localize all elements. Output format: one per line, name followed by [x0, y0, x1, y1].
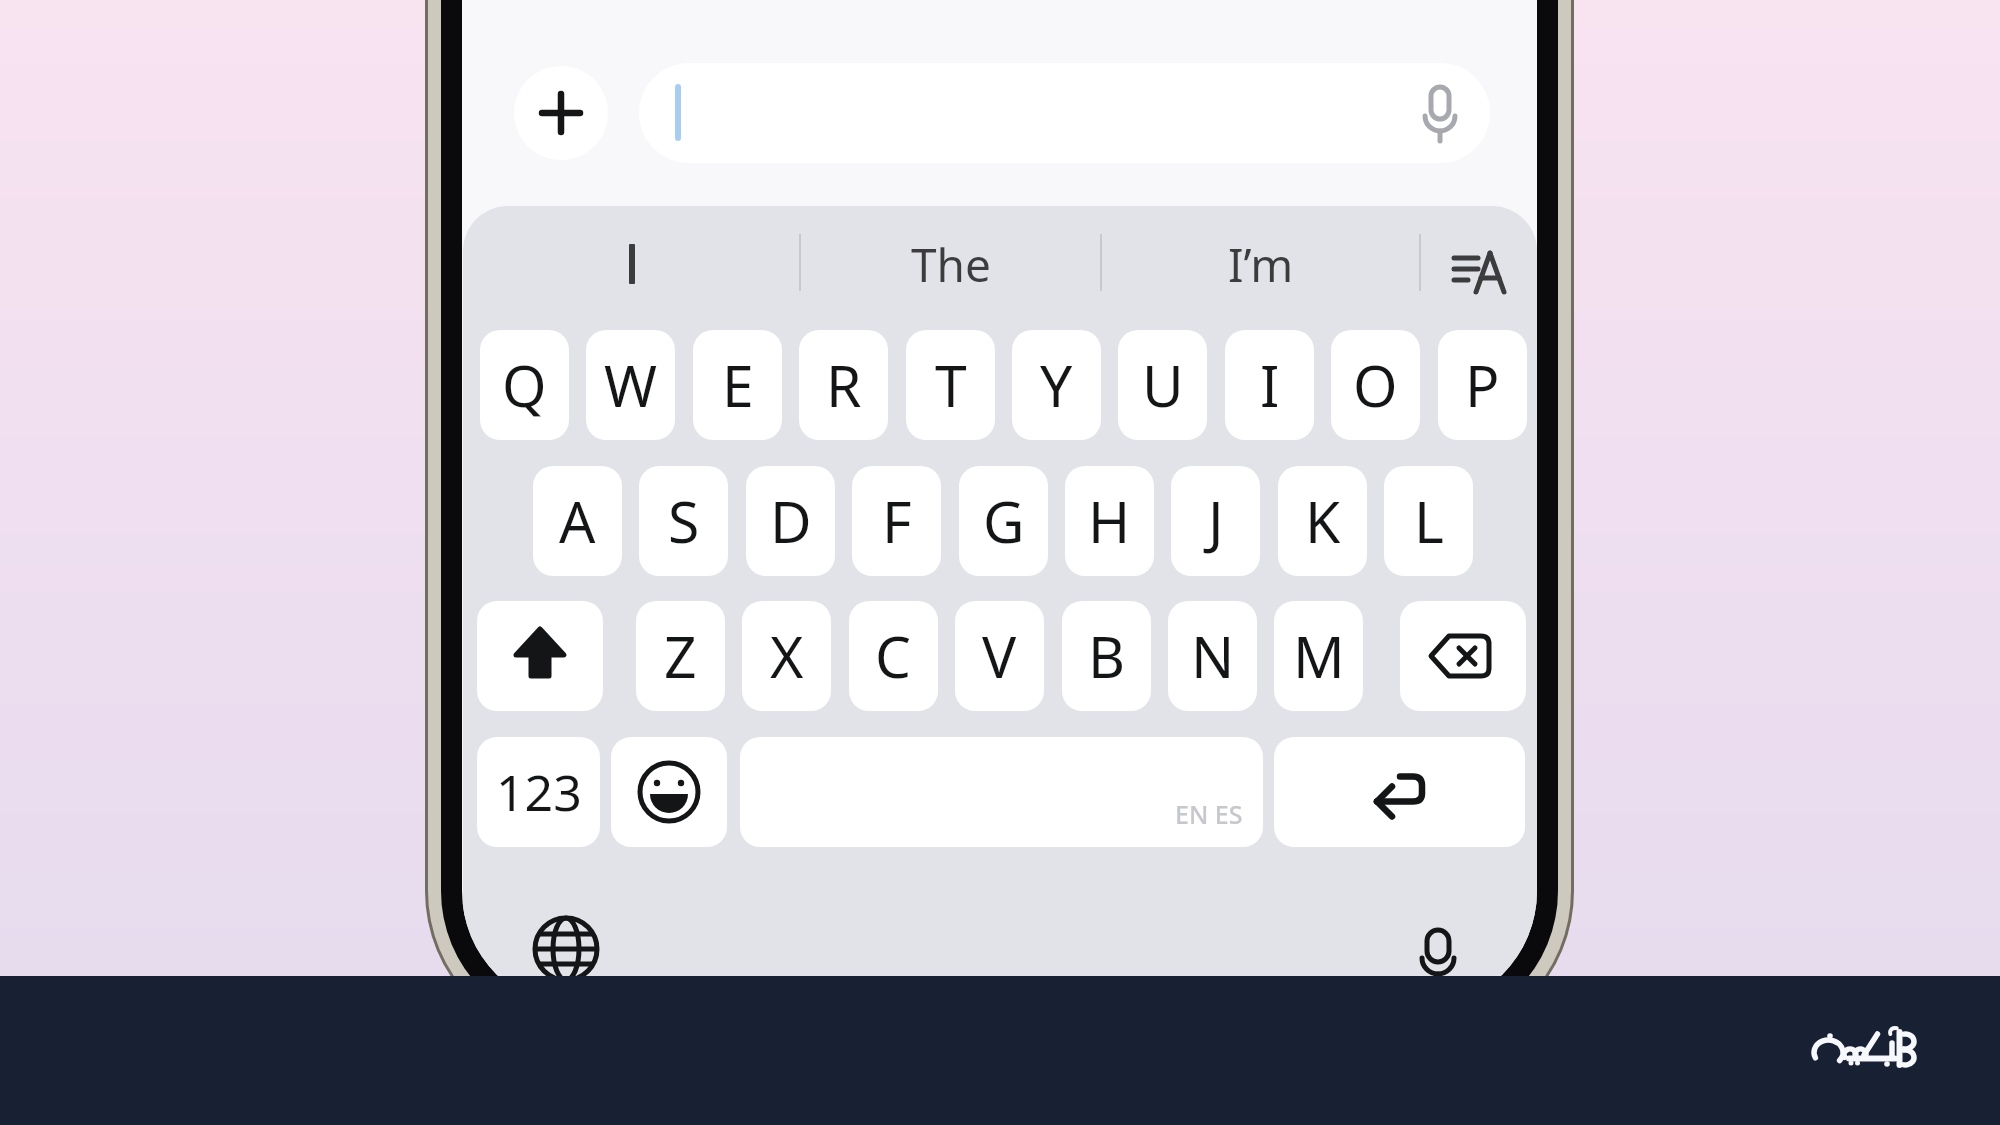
- staticText: M: [1293, 617, 1345, 695]
- staticText: U: [1142, 346, 1184, 424]
- staticText: C: [875, 617, 912, 695]
- button[interactable]: H: [1065, 466, 1154, 576]
- staticText: W: [604, 346, 658, 424]
- staticText: The: [911, 233, 991, 296]
- button[interactable]: L: [1384, 466, 1473, 576]
- button[interactable]: The: [800, 222, 1101, 306]
- button[interactable]: D: [746, 466, 835, 576]
- button[interactable]: S: [639, 466, 728, 576]
- staticText: T: [935, 346, 967, 424]
- button[interactable]: U: [1118, 330, 1207, 440]
- button[interactable]: N: [1168, 601, 1257, 711]
- button[interactable]: [477, 601, 603, 711]
- staticText: X: [770, 617, 804, 695]
- button[interactable]: [1444, 242, 1520, 302]
- button[interactable]: [463, 222, 800, 306]
- button[interactable]: V: [955, 601, 1044, 711]
- button[interactable]: J: [1171, 466, 1260, 576]
- button[interactable]: A: [533, 466, 622, 576]
- button[interactable]: Q: [480, 330, 569, 440]
- button[interactable]: EN ES: [740, 737, 1263, 847]
- button[interactable]: I’m: [1101, 222, 1420, 306]
- button[interactable]: [639, 63, 1490, 163]
- button[interactable]: T: [906, 330, 995, 440]
- button[interactable]: 123: [477, 737, 600, 847]
- staticText: R: [826, 346, 862, 424]
- staticText: 123: [496, 758, 582, 826]
- staticText: J: [1208, 482, 1224, 560]
- staticText: E: [722, 346, 754, 424]
- staticText: P: [1465, 346, 1500, 424]
- staticText: K: [1305, 482, 1341, 560]
- staticText: A: [559, 482, 596, 560]
- button[interactable]: E: [693, 330, 782, 440]
- button[interactable]: B: [1062, 601, 1151, 711]
- staticText: F: [882, 482, 912, 560]
- button[interactable]: F: [852, 466, 941, 576]
- staticText: I: [1260, 346, 1280, 424]
- button[interactable]: Y: [1012, 330, 1101, 440]
- button[interactable]: O: [1331, 330, 1420, 440]
- button[interactable]: K: [1278, 466, 1367, 576]
- button[interactable]: Z: [636, 601, 725, 711]
- staticText: L: [1414, 482, 1444, 560]
- staticText: H: [1088, 482, 1131, 560]
- button[interactable]: G: [959, 466, 1048, 576]
- button[interactable]: W: [586, 330, 675, 440]
- button[interactable]: P: [1438, 330, 1527, 440]
- staticText: S: [668, 482, 700, 560]
- staticText: N: [1191, 617, 1235, 695]
- staticText: I’m: [1228, 233, 1294, 296]
- button[interactable]: X: [742, 601, 831, 711]
- button[interactable]: I: [1225, 330, 1314, 440]
- staticText: D: [770, 482, 812, 560]
- staticText: O: [1353, 346, 1398, 424]
- button[interactable]: [1274, 737, 1525, 847]
- button[interactable]: [530, 913, 602, 985]
- button[interactable]: [1400, 601, 1526, 711]
- staticText: V: [982, 617, 1017, 695]
- staticText: Z: [664, 617, 697, 695]
- button[interactable]: C: [849, 601, 938, 711]
- button[interactable]: [514, 66, 608, 160]
- staticText: Q: [502, 346, 547, 424]
- staticText: B: [1088, 617, 1126, 695]
- button[interactable]: [1415, 928, 1461, 984]
- staticText: Y: [1040, 346, 1073, 424]
- button[interactable]: [611, 737, 727, 847]
- staticText: EN ES: [1175, 797, 1243, 831]
- button[interactable]: M: [1274, 601, 1363, 711]
- button[interactable]: R: [799, 330, 888, 440]
- staticText: G: [983, 482, 1025, 560]
